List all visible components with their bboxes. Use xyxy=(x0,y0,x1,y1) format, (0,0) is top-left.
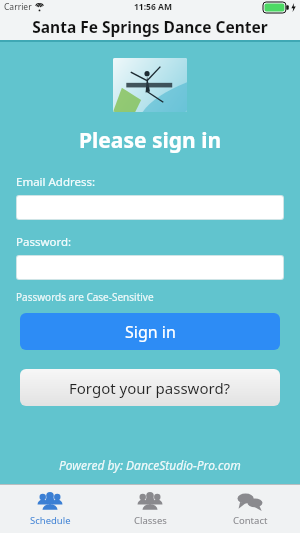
staticText: Schedule xyxy=(30,514,71,527)
staticText: Sign in xyxy=(125,321,176,343)
staticText: Powered by: DanceStudio-Pro.com xyxy=(59,457,241,473)
staticText: 11:56 AM xyxy=(134,1,172,13)
staticText: Passwords are Case-Sensitive xyxy=(16,290,154,304)
button[interactable]: Schedule xyxy=(0,485,100,533)
staticText: Santa Fe Springs Dance Center xyxy=(32,16,268,37)
staticText: Forgot your password? xyxy=(69,378,231,398)
button[interactable]: Forgot your password? xyxy=(20,369,280,406)
staticText: Password: xyxy=(16,234,72,250)
staticText: Please sign in xyxy=(79,126,222,155)
button[interactable]: Classes xyxy=(100,485,200,533)
staticText: Contact xyxy=(233,514,268,527)
staticText: Classes xyxy=(134,514,167,527)
button[interactable]: Sign in xyxy=(20,313,280,350)
staticText: Carrier xyxy=(4,1,32,13)
button[interactable]: Contact xyxy=(200,485,300,533)
staticText: Email Address: xyxy=(16,174,96,190)
